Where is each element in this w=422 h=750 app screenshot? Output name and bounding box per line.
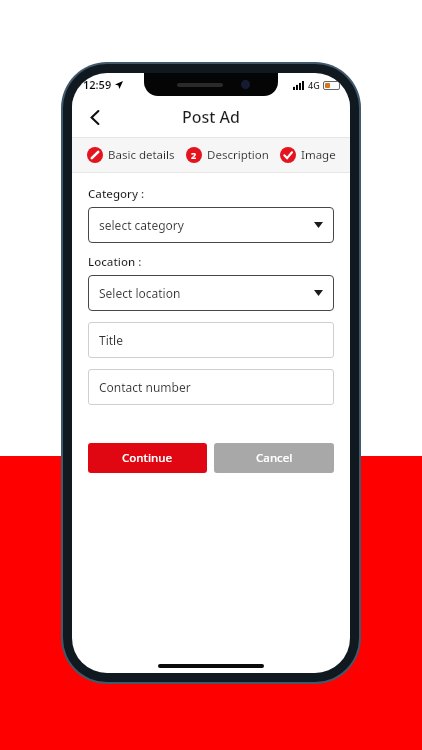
button[interactable]: 2 xyxy=(185,147,270,163)
button[interactable]: Cancel xyxy=(214,443,334,473)
button[interactable]: Back xyxy=(78,100,112,134)
staticText: Title xyxy=(99,332,123,348)
button[interactable]: Basic details xyxy=(86,147,176,163)
staticText: 12:59 xyxy=(83,77,112,92)
button[interactable]: select category xyxy=(88,207,334,243)
staticText: Contact number xyxy=(99,379,191,395)
staticText: 2 xyxy=(191,149,197,161)
staticText: Category : xyxy=(88,186,145,202)
button[interactable]: Continue xyxy=(88,443,207,473)
staticText: Select location xyxy=(99,285,181,301)
button[interactable]: Title xyxy=(88,322,334,358)
staticText: Description xyxy=(207,147,269,163)
staticText: Location : xyxy=(88,254,142,270)
staticText: select category xyxy=(99,217,184,233)
button[interactable]: Contact number xyxy=(88,369,334,405)
staticText: Basic details xyxy=(108,147,175,163)
button[interactable]: Image xyxy=(279,147,337,163)
staticText: Continue xyxy=(122,450,173,466)
staticText: Post Ad xyxy=(182,106,241,128)
staticText: Image xyxy=(301,147,336,163)
staticText: 4G xyxy=(308,79,320,91)
button[interactable]: Select location xyxy=(88,275,334,311)
staticText: Cancel xyxy=(256,450,293,466)
